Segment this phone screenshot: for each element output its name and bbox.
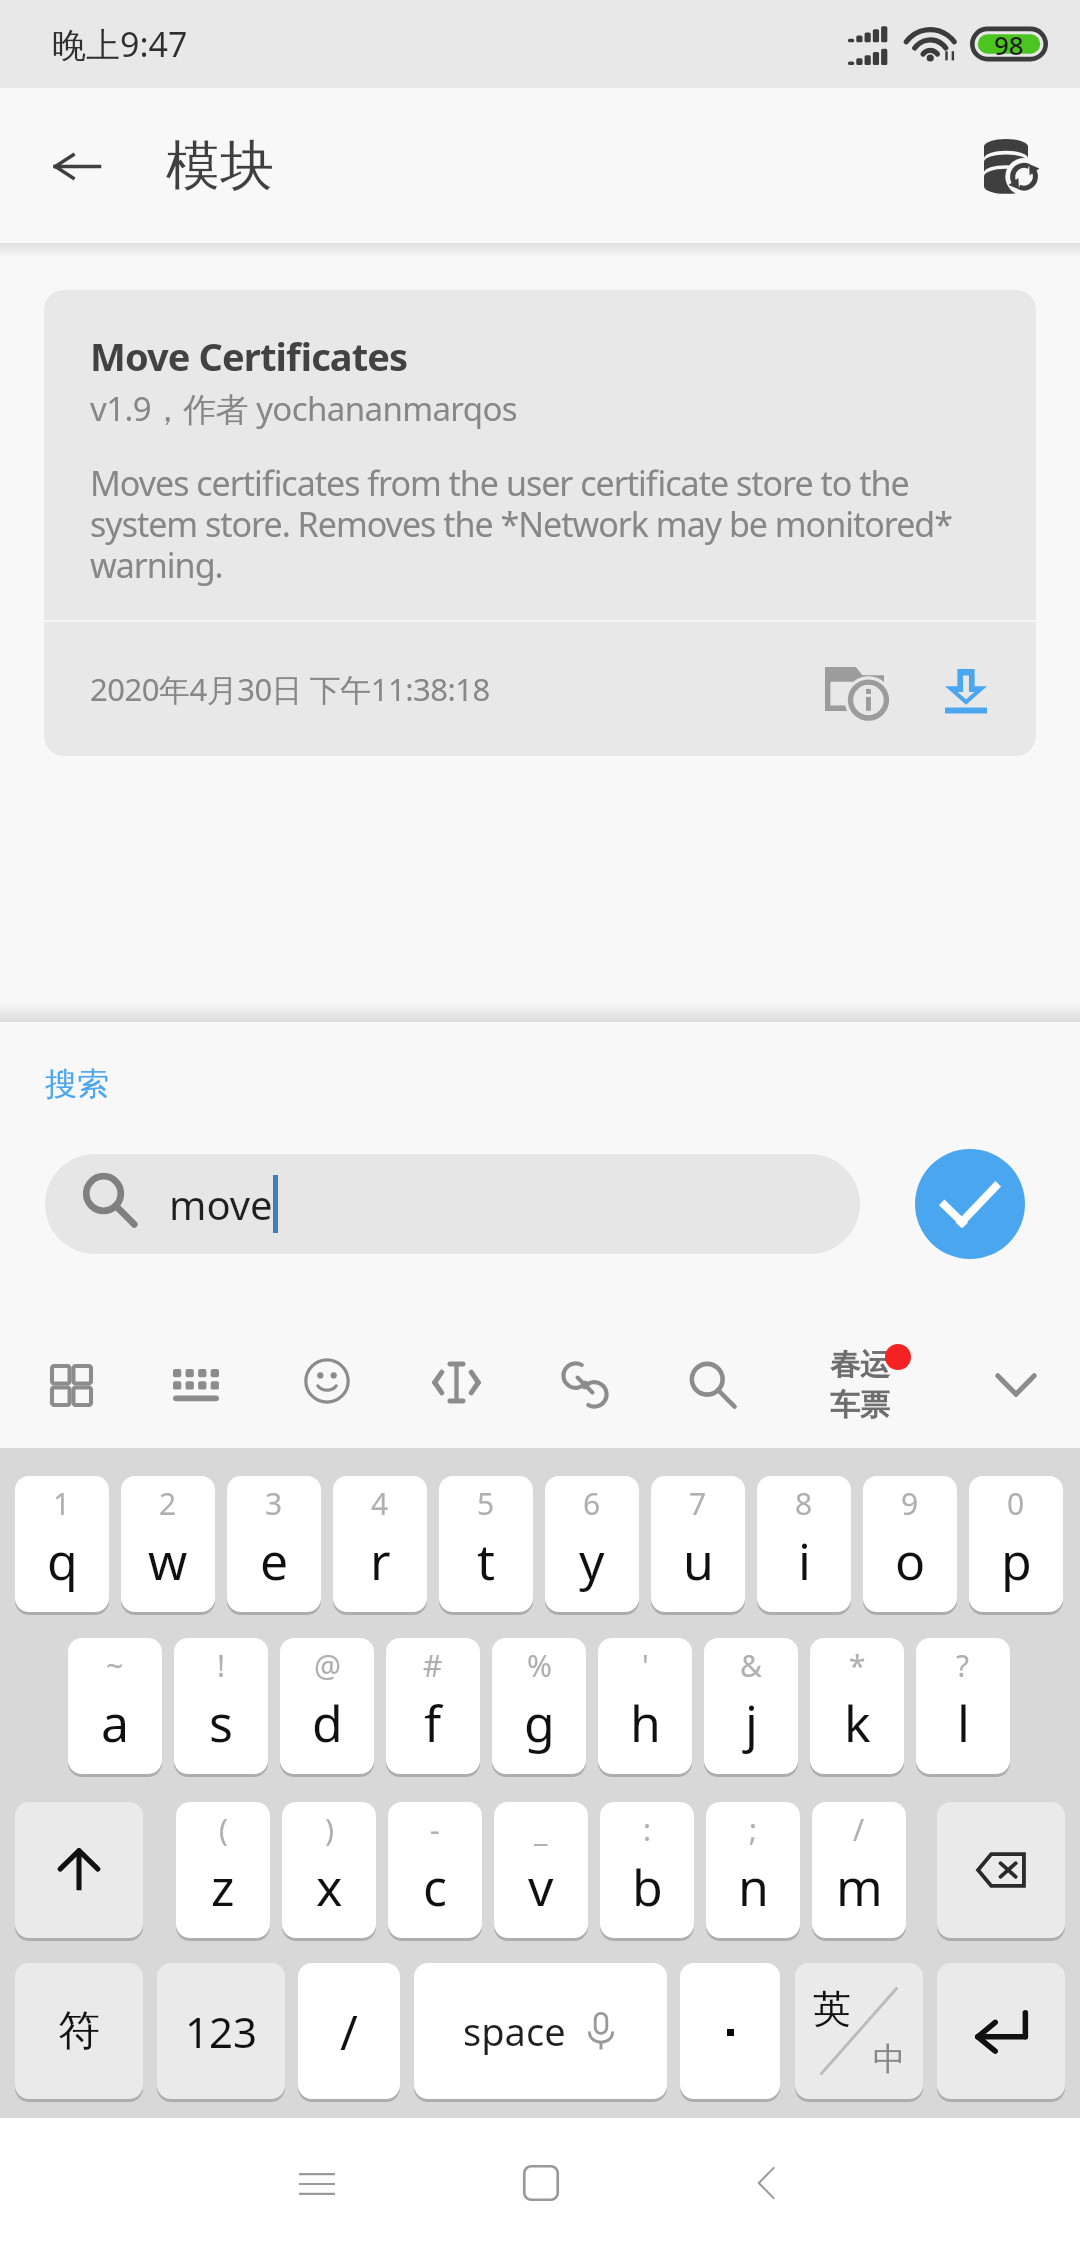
staticText: 123	[185, 2003, 258, 2060]
staticText: Moves certificates from the user certifi…	[90, 460, 996, 588]
button[interactable]: 2	[121, 1476, 215, 1612]
staticText: ?	[956, 1645, 970, 1686]
button[interactable]: 5	[439, 1476, 533, 1612]
button[interactable]: Move Certificates	[44, 290, 1036, 756]
button[interactable]: 英	[795, 1963, 923, 2099]
button[interactable]: @	[280, 1638, 374, 1774]
staticText: (	[219, 1809, 228, 1850]
button[interactable]: &	[704, 1638, 798, 1774]
button[interactable]: 0	[969, 1476, 1063, 1612]
staticText: 春运	[830, 1346, 890, 1384]
staticText: '	[642, 1645, 649, 1686]
button[interactable]: Confirm search	[915, 1149, 1025, 1259]
button[interactable]: Refresh database	[960, 116, 1060, 216]
button[interactable]: Home	[481, 2118, 601, 2248]
staticText: e	[260, 1527, 289, 1595]
staticText: Move Certificates	[90, 330, 408, 382]
button[interactable]: )	[282, 1802, 376, 1938]
button[interactable]: #	[386, 1638, 480, 1774]
staticText: 1	[53, 1483, 71, 1524]
button[interactable]: 4	[333, 1476, 427, 1612]
staticText: o	[895, 1527, 926, 1595]
staticText: h	[630, 1689, 661, 1757]
staticText: c	[423, 1853, 447, 1921]
button[interactable]: Recent apps	[257, 2118, 377, 2248]
button[interactable]: Module info	[806, 641, 902, 737]
button[interactable]: *	[810, 1638, 904, 1774]
staticText: ;	[749, 1809, 758, 1850]
staticText: 2	[159, 1483, 177, 1524]
staticText: j	[745, 1689, 758, 1757]
staticText: 3	[265, 1483, 283, 1524]
staticText: v1.9，作者 yochananmarqos	[90, 386, 517, 431]
staticText: move	[169, 1177, 273, 1231]
button[interactable]: %	[492, 1638, 586, 1774]
button[interactable]: Text editing	[395, 1322, 517, 1448]
staticText: -	[430, 1809, 440, 1850]
button[interactable]: 9	[863, 1476, 957, 1612]
button[interactable]: 7	[651, 1476, 745, 1612]
button[interactable]: Download	[918, 641, 1014, 737]
staticText: 8	[795, 1483, 813, 1524]
staticText: 英	[813, 1985, 851, 2033]
button[interactable]: '	[598, 1638, 692, 1774]
button[interactable]: /	[298, 1963, 400, 2099]
button[interactable]: Keyboard layout	[135, 1322, 257, 1448]
button[interactable]: 6	[545, 1476, 639, 1612]
staticText: 符	[58, 2005, 100, 2058]
staticText: space	[463, 2005, 566, 2057]
button[interactable]: (	[176, 1802, 270, 1938]
staticText: 4	[371, 1483, 389, 1524]
button[interactable]: move	[45, 1154, 860, 1254]
staticText: 9	[901, 1483, 919, 1524]
button[interactable]: 123	[157, 1963, 285, 2099]
button[interactable]: Hide keyboard	[955, 1322, 1077, 1448]
button[interactable]	[680, 1963, 780, 2099]
staticText: _	[534, 1809, 548, 1850]
staticText: q	[47, 1527, 78, 1595]
staticText: m	[836, 1853, 883, 1921]
button[interactable]: Link	[524, 1322, 646, 1448]
button[interactable]: !	[174, 1638, 268, 1774]
staticText: !	[217, 1645, 226, 1686]
button[interactable]	[15, 1802, 143, 1938]
staticText: *	[849, 1645, 866, 1686]
button[interactable]: Apps	[10, 1322, 132, 1448]
button[interactable]: ?	[916, 1638, 1010, 1774]
button[interactable]	[937, 1802, 1065, 1938]
staticText: b	[632, 1853, 663, 1921]
staticText: a	[101, 1689, 130, 1757]
staticText: d	[312, 1689, 343, 1757]
button[interactable]: 8	[757, 1476, 851, 1612]
button[interactable]: Back	[706, 2118, 826, 2248]
button[interactable]: 3	[227, 1476, 321, 1612]
staticText: /	[340, 1999, 358, 2064]
staticText: 2020年4月30日 下午11:38:18	[90, 668, 490, 710]
button[interactable]: -	[388, 1802, 482, 1938]
staticText: x	[316, 1853, 343, 1921]
staticText: t	[477, 1527, 496, 1595]
staticText: 晚上9:47	[52, 21, 188, 67]
button[interactable]: ;	[706, 1802, 800, 1938]
button[interactable]: space	[414, 1963, 667, 2099]
button[interactable]: :	[600, 1802, 694, 1938]
staticText: i	[798, 1527, 811, 1595]
staticText: @	[314, 1645, 341, 1686]
staticText: f	[424, 1689, 442, 1757]
button[interactable]: /	[812, 1802, 906, 1938]
button[interactable]: ~	[68, 1638, 162, 1774]
staticText: 车票	[830, 1386, 890, 1424]
button[interactable]: _	[494, 1802, 588, 1938]
staticText: k	[844, 1689, 871, 1757]
button[interactable]: Back	[29, 118, 125, 214]
button[interactable]	[937, 1963, 1065, 2099]
staticText: 6	[583, 1483, 601, 1524]
staticText: /	[853, 1809, 865, 1850]
button[interactable]: Search	[652, 1322, 774, 1448]
staticText: s	[209, 1689, 233, 1757]
button[interactable]: 符	[15, 1963, 143, 2099]
button[interactable]: Emoji	[266, 1322, 388, 1448]
staticText: 98	[994, 27, 1024, 62]
button[interactable]: Spring festival tickets	[799, 1322, 921, 1448]
button[interactable]: 1	[15, 1476, 109, 1612]
